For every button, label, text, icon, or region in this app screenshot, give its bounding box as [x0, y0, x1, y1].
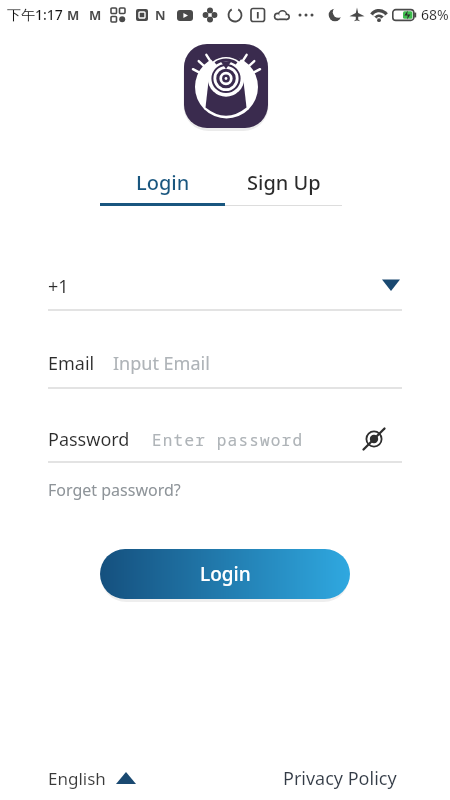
- button[interactable]: Forget password?: [44, 476, 177, 498]
- staticText: Forget password?: [48, 479, 181, 501]
- staticText: 68%: [421, 5, 449, 24]
- staticText: English: [48, 767, 106, 790]
- staticText: +1: [48, 274, 69, 299]
- staticText: Login: [136, 169, 190, 196]
- staticText: 下午1:17: [7, 5, 63, 24]
- button[interactable]: Sign Up: [225, 160, 342, 204]
- button[interactable]: [358, 424, 390, 454]
- staticText: Password: [48, 427, 130, 452]
- staticText: Email: [48, 351, 95, 376]
- staticText: N: [155, 6, 166, 24]
- staticText: Enter password: [152, 429, 304, 451]
- staticText: M: [89, 6, 102, 24]
- staticText: M: [67, 6, 80, 24]
- button[interactable]: English: [44, 762, 144, 794]
- button[interactable]: +1: [40, 266, 402, 310]
- button[interactable]: Login: [100, 160, 225, 204]
- button[interactable]: Login: [100, 549, 350, 599]
- staticText: Sign Up: [247, 169, 321, 196]
- button[interactable]: Privacy Policy: [280, 762, 410, 794]
- staticText: Login: [200, 561, 251, 587]
- staticText: Input Email: [113, 351, 210, 376]
- staticText: Privacy Policy: [283, 766, 397, 791]
